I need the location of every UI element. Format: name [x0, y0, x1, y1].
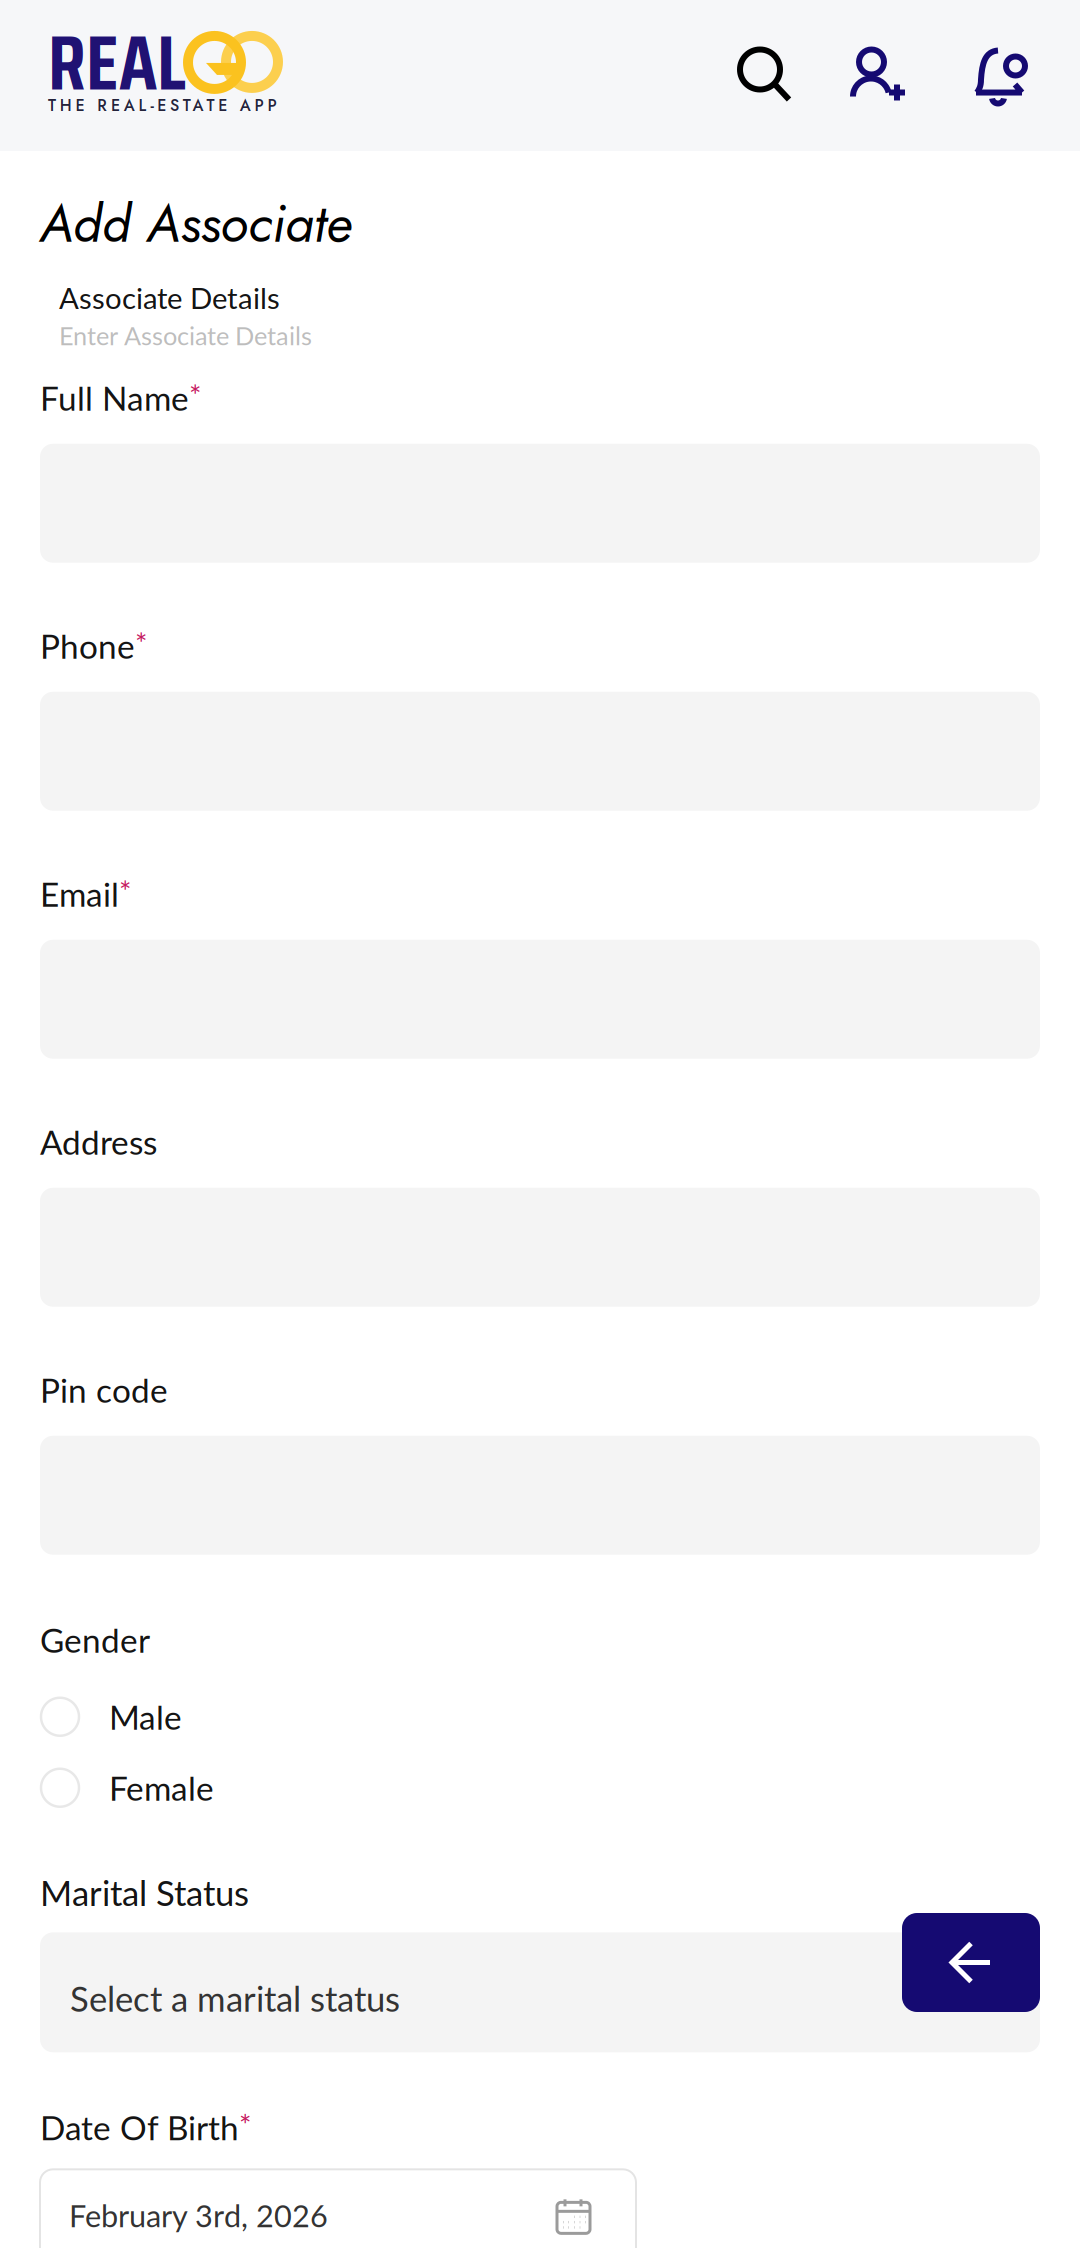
button[interactable]: Search — [739, 48, 793, 102]
staticText: * — [135, 626, 147, 661]
staticText: Gender — [40, 1620, 150, 1660]
staticText: Female — [109, 1768, 214, 1808]
staticText: REAL — [48, 3, 186, 123]
button[interactable]: Male — [40, 1686, 1040, 1748]
button[interactable]: Select a marital status — [40, 1932, 1040, 2052]
staticText: Full Name — [40, 378, 189, 418]
staticText: Address — [40, 1122, 157, 1162]
staticText: * — [119, 874, 131, 909]
button[interactable]: Add associate — [852, 48, 906, 102]
staticText: Select a marital status — [70, 1977, 400, 2019]
button[interactable]: February 3rd, 2026 — [40, 2169, 636, 2248]
staticText: Pin code — [40, 1370, 168, 1410]
staticText: Associate Details — [59, 280, 280, 315]
staticText: Email — [40, 874, 119, 914]
staticText: * — [189, 378, 201, 413]
staticText: Add Associate — [40, 186, 352, 261]
staticText: Enter Associate Details — [59, 320, 312, 351]
staticText: Date Of Birth — [40, 2107, 239, 2147]
button[interactable]: Female — [40, 1757, 1040, 1819]
button[interactable]: Notifications — [974, 48, 1028, 102]
staticText: Marital Status — [40, 1872, 249, 1913]
staticText: Phone — [40, 626, 135, 666]
staticText: February 3rd, 2026 — [69, 2197, 328, 2234]
staticText: Male — [109, 1697, 182, 1737]
button[interactable]: Back — [902, 1913, 1040, 2012]
staticText: THE REAL-ESTATE APP — [48, 94, 276, 117]
staticText: * — [239, 2107, 251, 2142]
